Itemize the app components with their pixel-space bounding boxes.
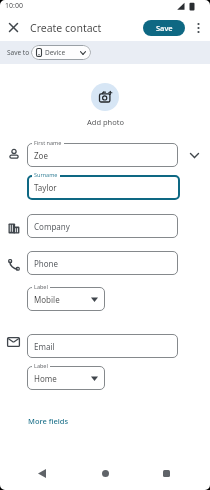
button[interactable] [30,462,54,484]
staticText: Label [34,362,48,369]
button[interactable]: Add photo [77,80,133,130]
button[interactable] [7,21,20,34]
button[interactable]: More fields [28,416,69,426]
staticText: Add photo [87,117,124,127]
staticText: Save to [7,48,30,57]
button[interactable]: Company [27,214,178,238]
staticText: Device [45,48,66,57]
button[interactable] [185,146,203,164]
button[interactable]: Zoe [27,143,178,167]
button[interactable]: Email [27,334,178,358]
button[interactable]: Phone [27,251,178,275]
staticText: Mobile [34,294,60,305]
staticText: Email [34,341,55,352]
staticText: Save [156,23,173,33]
button[interactable] [193,21,204,35]
staticText: 10:00 [5,1,23,11]
button[interactable]: Save [143,20,185,36]
button[interactable]: Device [31,45,91,60]
staticText: Create contact [30,21,102,35]
button[interactable] [93,462,117,484]
staticText: Zoe [34,150,48,161]
button[interactable]: Mobile [27,287,105,311]
button[interactable]: Taylor [27,175,180,200]
staticText: Phone [34,258,59,269]
staticText: Company [34,221,70,232]
staticText: Surname [34,171,58,178]
staticText: Home [34,373,57,384]
staticText: Label [34,283,48,290]
staticText: Taylor [34,182,57,193]
button[interactable] [154,462,178,484]
staticText: First name [34,139,62,146]
staticText: More fields [28,416,69,426]
button[interactable]: Home [27,366,105,390]
